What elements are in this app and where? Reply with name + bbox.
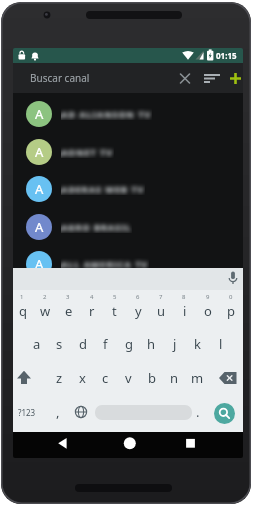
staticText: o [204, 302, 212, 320]
button[interactable] [119, 433, 140, 457]
staticText: h [147, 335, 156, 353]
staticText: A [35, 255, 44, 268]
staticText: AONET TV [61, 146, 114, 158]
staticText: 5 [113, 293, 117, 301]
staticText: y [135, 302, 142, 320]
staticText: x [79, 369, 86, 387]
button[interactable] [199, 69, 219, 87]
button[interactable]: l [210, 331, 231, 357]
staticText: ALL AMERICA TV [61, 258, 149, 268]
button[interactable]: A [13, 245, 243, 268]
button[interactable]: b [141, 365, 162, 391]
button[interactable]: . [187, 399, 208, 425]
button[interactable]: k [187, 331, 208, 357]
staticText: A [35, 105, 44, 123]
staticText: r [89, 302, 95, 320]
button[interactable]: m [187, 365, 208, 391]
staticText: 8 [182, 293, 186, 301]
button[interactable]: j [164, 331, 185, 357]
staticText: z [56, 369, 63, 387]
staticText: A [35, 218, 44, 236]
button[interactable]: A [13, 208, 243, 246]
staticText: 1 [20, 293, 24, 301]
staticText: . [196, 403, 200, 421]
staticText: 4 [90, 293, 94, 301]
button[interactable] [95, 405, 192, 420]
button[interactable]: t [104, 298, 125, 324]
staticText: q [19, 302, 27, 320]
button[interactable]: ?123 [14, 399, 40, 425]
button[interactable]: h [141, 331, 162, 357]
staticText: ADERAS WEB TV [61, 183, 145, 195]
staticText: k [194, 335, 201, 353]
staticText: 2 [43, 293, 47, 301]
button[interactable] [52, 433, 73, 457]
staticText: j [173, 335, 177, 353]
staticText: n [170, 369, 179, 387]
staticText: 6 [136, 293, 140, 301]
button[interactable] [216, 366, 240, 390]
button[interactable]: o [197, 298, 218, 324]
button[interactable]: c [95, 365, 116, 391]
button[interactable] [223, 268, 243, 290]
button[interactable]: u [151, 298, 172, 324]
staticText: i [183, 302, 187, 320]
button[interactable]: Buscar canal [13, 63, 243, 93]
button[interactable]: w [35, 298, 56, 324]
button[interactable]: A [13, 133, 243, 171]
staticText: g [125, 335, 133, 353]
staticText: w [40, 302, 51, 320]
button[interactable]: y [128, 298, 149, 324]
staticText: l [219, 335, 223, 353]
button[interactable] [180, 433, 201, 457]
button[interactable]: s [49, 331, 70, 357]
button[interactable]: A [13, 95, 243, 133]
staticText: a [33, 335, 41, 353]
staticText: AGRO BRASIL [61, 221, 132, 233]
button[interactable]: r [81, 298, 102, 324]
staticText: p [227, 302, 235, 320]
button[interactable]: v [118, 365, 139, 391]
button[interactable] [214, 403, 235, 424]
staticText: t [112, 302, 117, 320]
staticText: AD ALIANSON TV [61, 108, 152, 120]
staticText: d [79, 335, 87, 353]
button[interactable]: p [220, 298, 241, 324]
staticText: 0 [229, 293, 233, 301]
staticText: v [125, 369, 132, 387]
button[interactable]: q [13, 298, 33, 324]
button[interactable]: A [13, 170, 243, 208]
button[interactable]: a [26, 331, 47, 357]
staticText: b [148, 369, 156, 387]
staticText: A [35, 143, 44, 161]
staticText: f [103, 335, 108, 353]
button[interactable] [16, 366, 40, 390]
button[interactable]: f [95, 331, 116, 357]
staticText: 3 [66, 293, 70, 301]
staticText: 01:15 [216, 50, 237, 61]
staticText: u [157, 302, 166, 320]
button[interactable] [225, 69, 243, 87]
staticText: A [35, 180, 44, 198]
staticText: m [191, 369, 204, 387]
button[interactable] [176, 69, 194, 87]
staticText: ?123 [18, 407, 36, 418]
staticText: s [56, 335, 63, 353]
button[interactable]: d [72, 331, 93, 357]
staticText: , [56, 403, 60, 421]
staticText: 9 [206, 293, 210, 301]
button[interactable]: z [49, 365, 70, 391]
button[interactable]: x [72, 365, 93, 391]
button[interactable]: , [47, 399, 68, 425]
button[interactable]: g [118, 331, 139, 357]
staticText: Buscar canal [30, 71, 90, 85]
button[interactable]: i [174, 298, 195, 324]
staticText: e [65, 302, 73, 320]
button[interactable]: e [58, 298, 79, 324]
button[interactable] [70, 400, 92, 424]
staticText: 7 [159, 293, 163, 301]
button[interactable]: n [164, 365, 185, 391]
staticText: c [102, 369, 109, 387]
